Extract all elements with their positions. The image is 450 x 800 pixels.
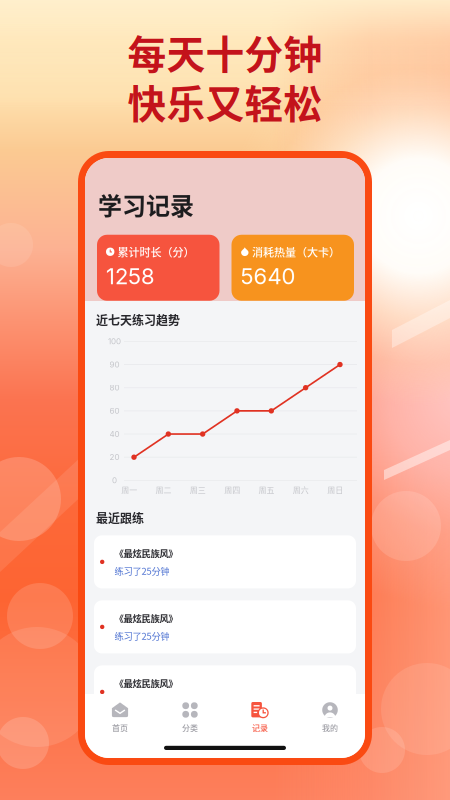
button[interactable]: 分类 [155, 701, 225, 735]
staticText: 周一 [121, 484, 137, 496]
staticText: 练习了25分钟 [114, 629, 169, 642]
staticText: 周四 [224, 484, 240, 496]
staticText: 《最炫民族风》 [114, 676, 177, 690]
staticText: 周三 [190, 484, 206, 496]
staticText: 练习了25分钟 [114, 694, 169, 707]
staticText: 分类 [182, 722, 198, 734]
staticText: 每天十分钟 [127, 24, 322, 80]
staticText: 首页 [112, 722, 128, 734]
button[interactable]: 《最炫民族风》 [94, 535, 356, 588]
button[interactable]: 首页 [85, 701, 155, 735]
staticText: 40 [109, 429, 119, 439]
staticText: 周五 [258, 484, 274, 496]
staticText: 我的 [322, 722, 338, 734]
staticText: 1258 [106, 263, 155, 290]
staticText: 80 [109, 383, 119, 393]
staticText: 60 [109, 406, 119, 416]
staticText: 《最炫民族风》 [114, 546, 177, 560]
staticText: 0 [112, 475, 117, 485]
staticText: 100 [108, 336, 121, 346]
staticText: 周日 [327, 484, 343, 496]
staticText: 5640 [240, 263, 295, 290]
staticText: 最近跟练 [96, 509, 144, 526]
staticText: 周二 [155, 484, 171, 496]
staticText: 90 [109, 360, 119, 369]
button[interactable]: 我的 [295, 701, 365, 735]
staticText: 近七天练习趋势 [96, 311, 180, 328]
button[interactable]: 记录 [225, 701, 295, 735]
staticText: 《最炫民族风》 [114, 611, 177, 625]
staticText: 记录 [252, 722, 268, 734]
button[interactable]: 《最炫民族风》 [94, 600, 356, 653]
staticText: 练习了25分钟 [114, 564, 169, 577]
staticText: 快乐又轻松 [127, 73, 322, 129]
staticText: 消耗热量（大卡） [252, 244, 340, 260]
button[interactable]: 《最炫民族风》 [94, 665, 356, 718]
staticText: 累计时长（分） [117, 244, 194, 260]
staticText: 20 [109, 452, 119, 462]
staticText: 周六 [293, 484, 309, 496]
staticText: 学习记录 [98, 187, 194, 222]
